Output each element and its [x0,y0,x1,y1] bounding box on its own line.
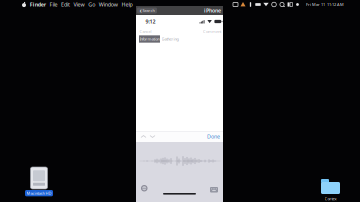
staticText: Edit [61,1,70,8]
staticText: 9:12 [145,18,155,25]
button[interactable]: ‹ [137,7,157,13]
staticText: View [74,1,85,8]
staticText: File [49,1,57,8]
button[interactable]: Help [120,0,134,9]
staticText: Information [139,36,159,42]
staticText: Macintosh HD [26,190,51,196]
button[interactable]: Dismiss keyboard [210,187,218,192]
staticText: Window [99,1,118,8]
button[interactable]: Next field [148,131,157,142]
button[interactable]: Edit [59,0,72,9]
staticText: Cancel [139,29,151,34]
staticText: Comment [203,29,221,34]
button[interactable]: Apple menu [20,0,28,9]
button[interactable]: Done [205,131,222,142]
staticText: Finder [30,1,46,8]
button[interactable]: File [48,0,59,9]
button[interactable]: Window [97,0,120,9]
staticText: Gathering [161,36,178,42]
staticText: Search [142,8,154,13]
staticText: Go [88,1,95,8]
button[interactable]: Go [86,0,97,9]
button[interactable]: Cancel [136,28,155,35]
button[interactable]: Comment [201,28,223,35]
staticText: iPhone [204,7,221,14]
button[interactable]: Cortex [321,179,340,201]
button[interactable]: Macintosh HD [25,167,53,196]
staticText: Help [121,1,132,8]
staticText: Done [207,133,220,140]
button[interactable]: Finder [28,0,48,9]
button[interactable]: View [72,0,86,9]
staticText: Fri Mar 11 11:12 AM [306,2,344,7]
staticText: ‹ [139,6,141,15]
staticText: Cortex [324,196,336,201]
button[interactable]: Emoji and languages [141,185,147,191]
button[interactable]: Previous field [139,131,148,142]
